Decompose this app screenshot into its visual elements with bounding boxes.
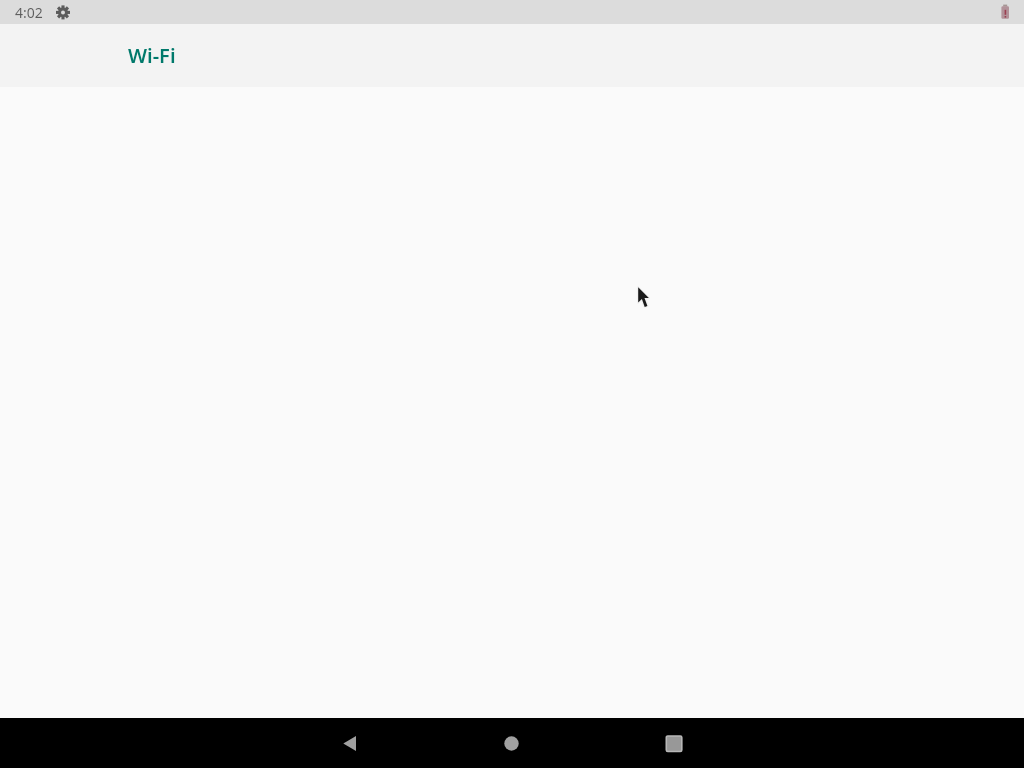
button[interactable] (487, 719, 535, 767)
staticText: Wi-Fi (128, 42, 176, 69)
button[interactable] (325, 719, 373, 767)
staticText: 4:02 (15, 3, 43, 22)
button[interactable] (650, 719, 698, 767)
